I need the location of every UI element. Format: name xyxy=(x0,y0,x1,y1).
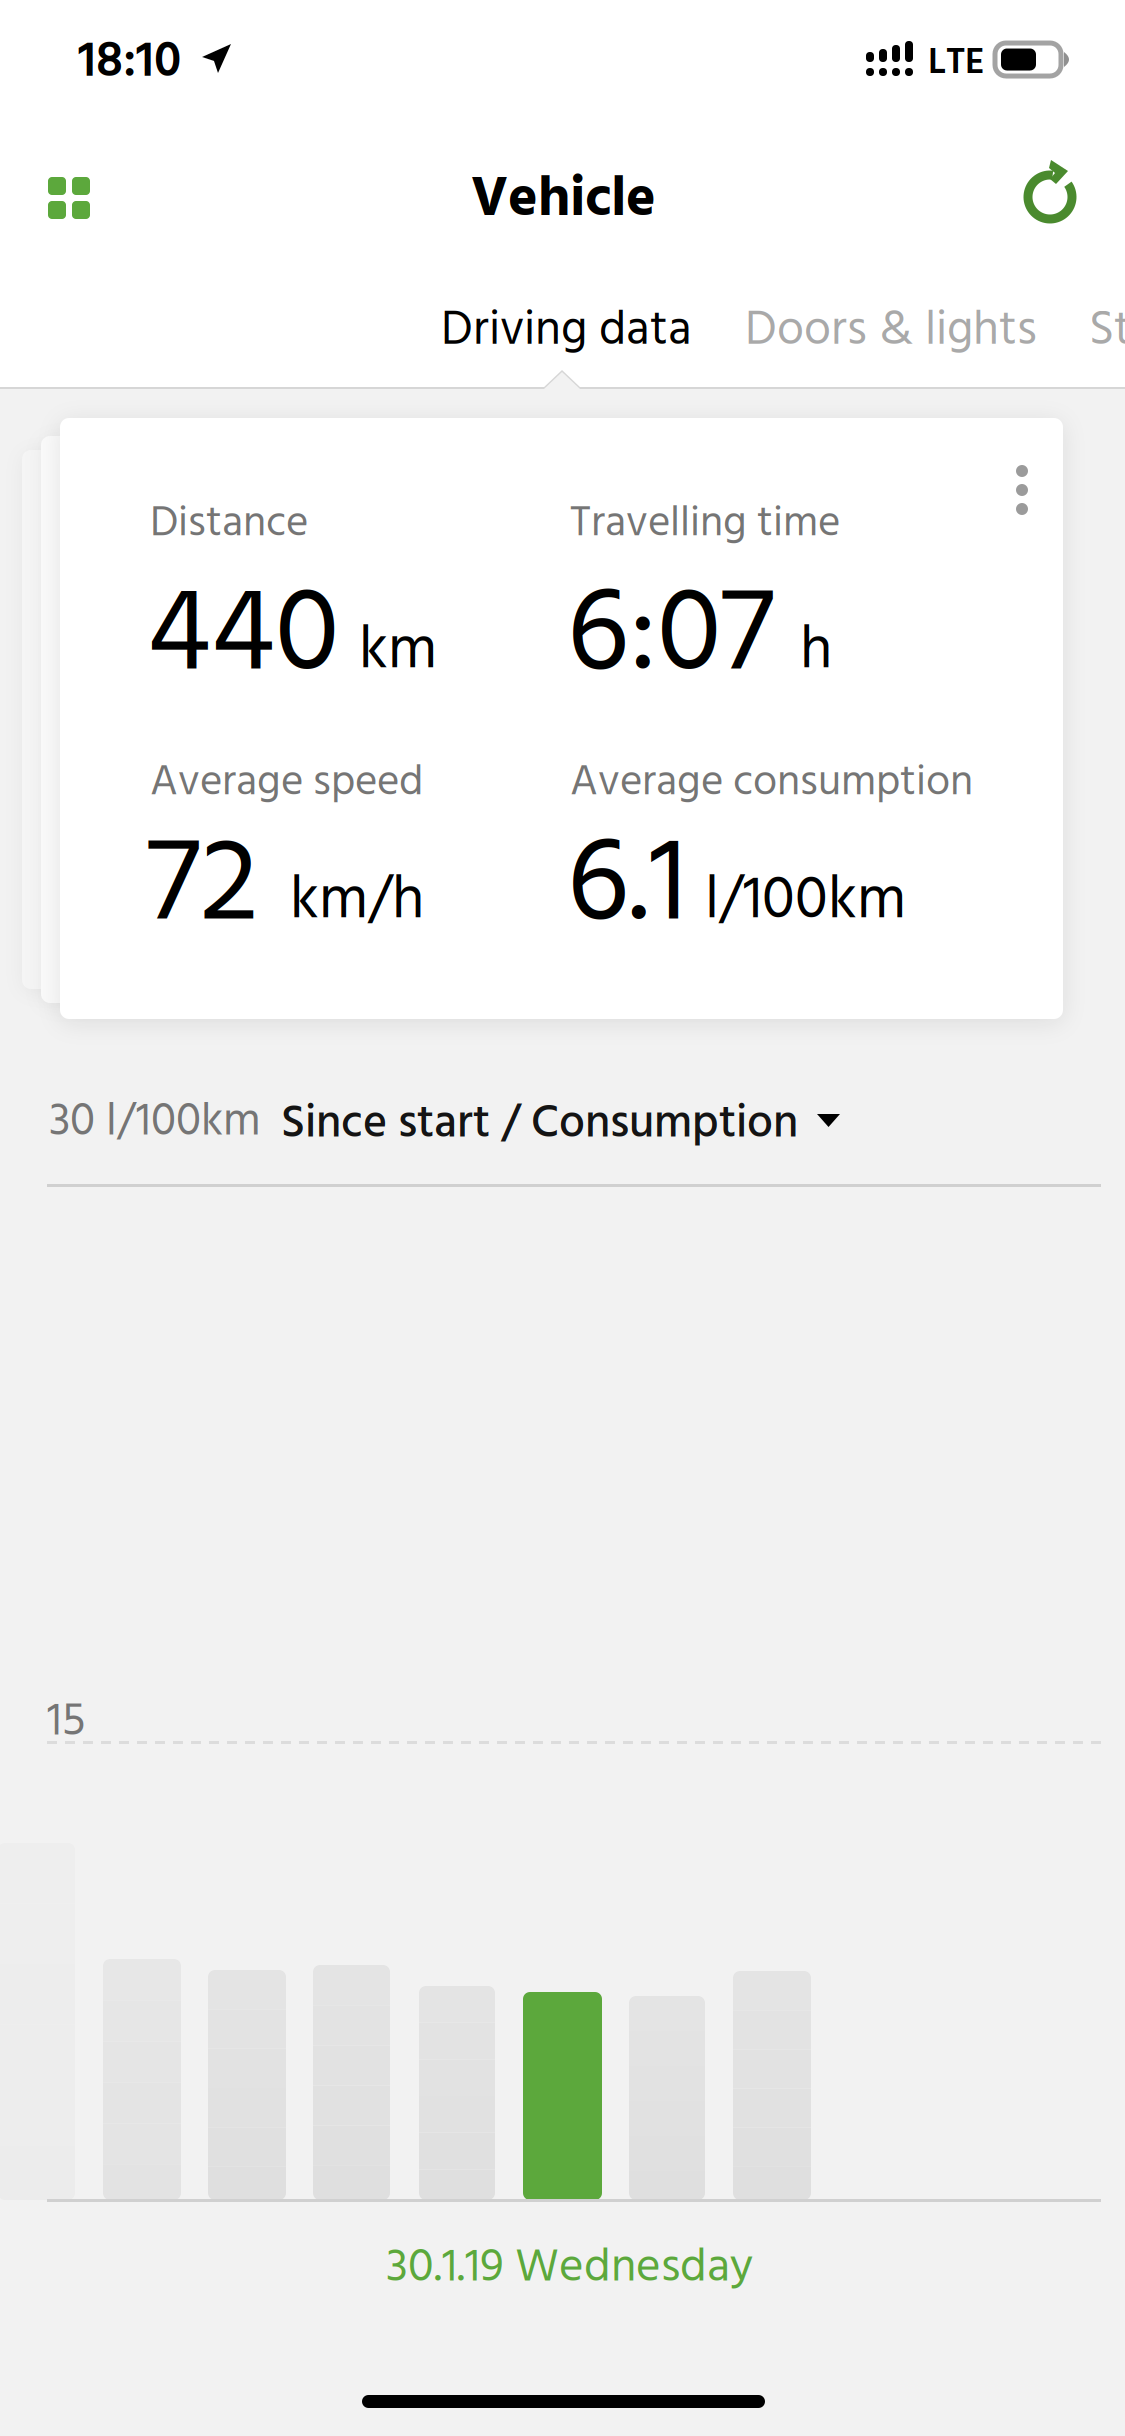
button[interactable]: Doors & lights xyxy=(718,270,1062,388)
staticText: Average consumption xyxy=(570,749,973,818)
staticText: km/h xyxy=(290,854,424,950)
button[interactable]: Status xyxy=(1092,270,1125,388)
button[interactable]: Dashboard xyxy=(13,142,125,254)
staticText: 6.1 xyxy=(567,794,687,983)
staticText: 6:07 xyxy=(567,544,774,733)
staticText: Average speed xyxy=(150,749,423,818)
staticText: 440 xyxy=(147,544,339,733)
button[interactable]: Refresh xyxy=(996,142,1108,254)
staticText: Travelling time xyxy=(570,490,840,559)
staticText: Vehicle xyxy=(471,156,656,246)
staticText: 18:10 xyxy=(78,23,181,103)
staticText: 30 l/100km xyxy=(49,1086,261,1160)
staticText: Distance xyxy=(150,490,308,559)
staticText: Doors & lights xyxy=(745,293,1037,370)
staticText: l/100km xyxy=(705,854,906,950)
staticText: Status xyxy=(1089,293,1125,370)
button[interactable]: Since start / Consumption xyxy=(283,1086,865,1164)
staticText: LTE xyxy=(928,34,985,93)
staticText: h xyxy=(800,604,832,700)
staticText: km xyxy=(359,604,437,700)
staticText: 15 xyxy=(47,1686,85,1760)
staticText: 30.1.19 Wednesday xyxy=(386,2231,753,2306)
staticText: Since start / Consumption xyxy=(281,1088,798,1162)
button[interactable]: Driving data xyxy=(414,270,710,388)
staticText: Driving data xyxy=(441,293,692,370)
button[interactable]: More options xyxy=(980,438,1063,542)
staticText: 72 xyxy=(147,794,258,983)
